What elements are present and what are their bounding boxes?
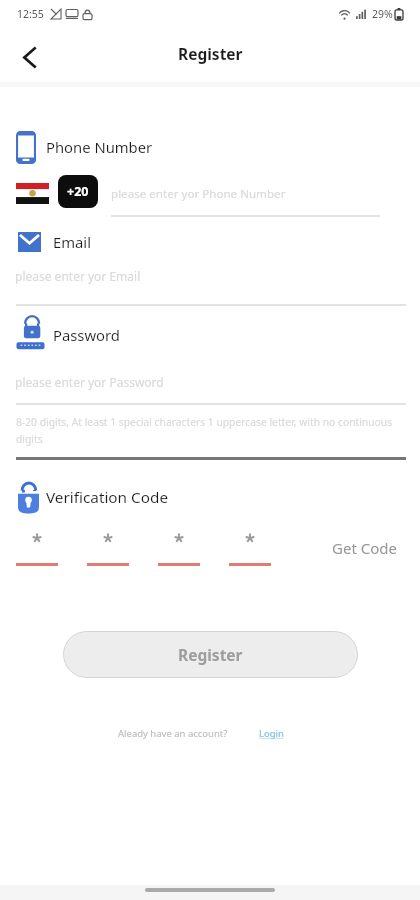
staticText: please enter yor Email bbox=[15, 268, 141, 284]
staticText: Phone Number bbox=[46, 137, 153, 157]
button[interactable]: Register bbox=[63, 631, 358, 678]
button[interactable]: Get Code bbox=[332, 538, 397, 558]
staticText: please enter yor Phone Number bbox=[111, 186, 286, 202]
staticText: Password bbox=[53, 325, 120, 345]
staticText: Register bbox=[178, 43, 243, 64]
button[interactable]: Login bbox=[259, 727, 284, 740]
button[interactable]: Back bbox=[11, 39, 47, 75]
staticText: Aleady have an account? bbox=[118, 727, 228, 740]
staticText: Get Code bbox=[332, 538, 397, 558]
staticText: Email bbox=[53, 232, 91, 252]
button[interactable] bbox=[158, 533, 200, 566]
staticText: 29% bbox=[372, 7, 393, 21]
staticText: Login bbox=[259, 727, 284, 740]
button[interactable]: please enter yor Phone Number bbox=[111, 180, 380, 217]
staticText: +20 bbox=[67, 183, 89, 200]
button[interactable]: please enter yor Password bbox=[15, 368, 406, 405]
staticText: 8-20 digits, At least 1 special characte… bbox=[16, 415, 396, 446]
button[interactable] bbox=[87, 533, 129, 566]
button[interactable] bbox=[16, 533, 58, 566]
button[interactable]: please enter yor Email bbox=[15, 262, 406, 306]
staticText: please enter yor Password bbox=[15, 374, 164, 390]
staticText: 12:55 bbox=[17, 7, 44, 21]
button[interactable] bbox=[229, 533, 271, 566]
button[interactable]: +20 bbox=[58, 175, 98, 208]
staticText: Verification Code bbox=[46, 487, 169, 508]
staticText: Register bbox=[178, 644, 243, 665]
